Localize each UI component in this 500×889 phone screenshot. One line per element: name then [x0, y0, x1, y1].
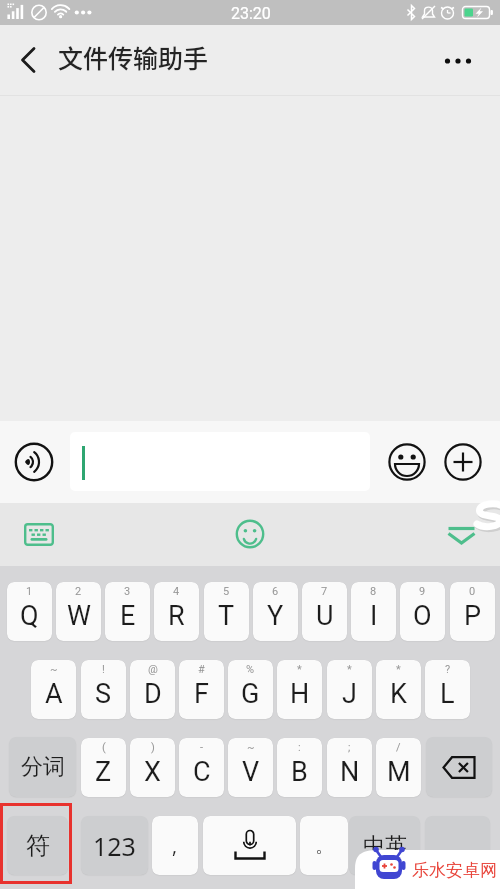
staticText: 1 [26, 585, 33, 598]
button[interactable]: @ [130, 660, 175, 719]
staticText: # [198, 663, 205, 676]
staticText: M [387, 756, 411, 788]
staticText: C [193, 756, 211, 788]
staticText: 6 [272, 585, 279, 598]
button[interactable]: / [376, 738, 421, 797]
staticText: O [413, 600, 432, 632]
button[interactable]: 7 [302, 582, 347, 641]
staticText: Q [20, 600, 39, 632]
button[interactable] [425, 816, 490, 875]
button[interactable]: : [277, 738, 322, 797]
staticText: 2 [75, 585, 82, 598]
button[interactable]: 0 [450, 582, 495, 641]
staticText: ( [102, 741, 106, 754]
staticText: Y [267, 600, 284, 632]
staticText: 中英 [363, 832, 407, 860]
staticText: H [290, 678, 310, 710]
button[interactable]: * [327, 660, 372, 719]
button[interactable]: More options [416, 25, 500, 95]
button[interactable]: Voice message [13, 441, 55, 483]
button[interactable]: More functions [442, 441, 484, 483]
button[interactable]: 中英 [349, 816, 420, 875]
button[interactable]: ( [81, 738, 126, 797]
staticText: 0 [469, 585, 476, 598]
button[interactable]: 9 [400, 582, 445, 641]
staticText: % [246, 663, 255, 676]
staticText: ? [445, 663, 451, 676]
button[interactable]: Emoji keyboard [228, 514, 272, 554]
staticText: ! [102, 663, 105, 676]
staticText: 8 [370, 585, 377, 598]
staticText: 符 [26, 831, 50, 861]
staticText: T [218, 600, 235, 632]
button[interactable]: Emoji [386, 441, 428, 483]
staticText: * [297, 663, 302, 676]
button[interactable]: ! [81, 660, 126, 719]
staticText: D [144, 678, 162, 710]
button[interactable]: 3 [105, 582, 150, 641]
staticText: G [241, 678, 260, 710]
button[interactable]: % [228, 660, 273, 719]
staticText: 文件传输助手 [58, 39, 209, 75]
staticText: L [440, 678, 455, 710]
staticText: 乐水安卓网 [412, 860, 497, 881]
staticText: ~ [50, 663, 58, 676]
button[interactable] [70, 432, 370, 491]
staticText: ) [151, 741, 155, 754]
staticText: : [298, 741, 301, 754]
staticText: E [120, 600, 136, 632]
button[interactable]: 123 [81, 816, 148, 875]
button[interactable]: 1 [7, 582, 52, 641]
button[interactable]: Hide keyboard [440, 515, 482, 554]
staticText: Z [95, 756, 112, 788]
staticText: - [200, 741, 204, 754]
staticText: I [370, 600, 378, 632]
button[interactable]: Space [203, 816, 296, 875]
button[interactable]: ) [130, 738, 175, 797]
button[interactable]: 5 [204, 582, 249, 641]
button[interactable]: 符 [7, 816, 68, 875]
button[interactable]: ~ [31, 660, 76, 719]
staticText: , [172, 833, 178, 859]
button[interactable]: - [179, 738, 224, 797]
button[interactable]: ? [425, 660, 470, 719]
staticText: V [242, 756, 260, 788]
button[interactable]: 8 [351, 582, 396, 641]
button[interactable]: * [277, 660, 322, 719]
staticText: 23:20 [231, 4, 271, 23]
staticText: U [316, 600, 334, 632]
staticText: S [95, 678, 112, 710]
staticText: * [396, 663, 401, 676]
button[interactable]: 分词 [9, 737, 76, 797]
staticText: ; [348, 741, 351, 754]
staticText: X [144, 756, 161, 788]
staticText: 4 [173, 585, 180, 598]
button[interactable]: Backspace [426, 737, 492, 797]
staticText: / [396, 741, 401, 754]
staticText: ~ [247, 741, 255, 754]
button[interactable]: 。 [300, 816, 348, 875]
staticText: * [347, 663, 352, 676]
staticText: W [67, 600, 91, 632]
button[interactable]: 4 [154, 582, 199, 641]
button[interactable]: Back [0, 25, 56, 95]
staticText: @ [148, 663, 158, 676]
button[interactable]: Keyboard layout [16, 514, 62, 554]
staticText: 9 [419, 585, 426, 598]
button[interactable]: , [152, 816, 198, 875]
button[interactable]: 2 [56, 582, 101, 641]
staticText: B [291, 756, 308, 788]
staticText: K [390, 678, 407, 710]
button[interactable]: * [376, 660, 421, 719]
button[interactable]: ~ [228, 738, 273, 797]
staticText: 分词 [21, 753, 65, 781]
button[interactable]: # [179, 660, 224, 719]
button[interactable]: 6 [253, 582, 298, 641]
staticText: 3 [124, 585, 131, 598]
staticText: J [342, 678, 357, 710]
staticText: 。 [315, 834, 334, 858]
staticText: P [464, 600, 482, 632]
button[interactable]: ; [327, 738, 372, 797]
staticText: 5 [223, 585, 230, 598]
staticText: F [194, 678, 209, 710]
